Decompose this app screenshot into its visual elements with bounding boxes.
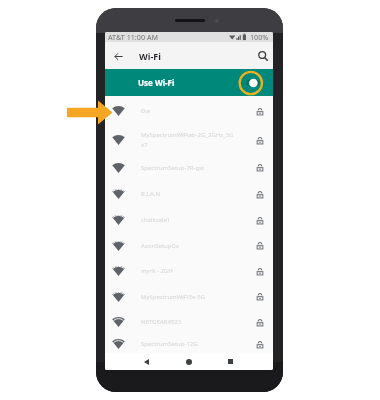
button[interactable]: Search bbox=[254, 47, 272, 65]
staticText: NETGEAR4523 bbox=[141, 318, 182, 326]
button[interactable]: Use Wi-Fi bbox=[105, 69, 273, 96]
staticText: MySpectrumWiFi5e-5G bbox=[141, 293, 206, 301]
staticText: Use Wi-Fi bbox=[138, 77, 175, 88]
button[interactable]: Use Wi-Fi toggle bbox=[240, 70, 266, 96]
button[interactable]: MySpectrumWiFi5e-5G bbox=[105, 284, 273, 309]
button[interactable]: SpectrumSetup-12G bbox=[105, 335, 273, 353]
staticText: SpectrumSetup-12G bbox=[141, 340, 198, 348]
button[interactable]: Back bbox=[140, 355, 153, 368]
button[interactable]: MySpectrumWiFiab-2G_2GHz_5G bbox=[105, 126, 273, 154]
button[interactable]: NETGEAR4523 bbox=[105, 309, 273, 335]
staticText: MySpectrumWiFiab-2G_2GHz_5G bbox=[141, 131, 234, 139]
button[interactable]: myrk - 2GH bbox=[105, 258, 273, 284]
button[interactable]: chalkzale1 bbox=[105, 207, 273, 233]
button[interactable]: Home bbox=[182, 355, 195, 368]
staticText: AxonSetupCo bbox=[141, 242, 179, 250]
staticText: AT&T 11:00 AM bbox=[108, 32, 158, 42]
button[interactable]: Navigate up bbox=[109, 47, 127, 65]
staticText: 100% bbox=[250, 32, 269, 42]
button[interactable]: R.I.A.N bbox=[105, 181, 273, 207]
staticText: x7 bbox=[141, 141, 148, 149]
staticText: SpectrumSetup-7R-gst bbox=[141, 164, 205, 172]
staticText: Wi-Fi bbox=[139, 50, 161, 62]
button[interactable]: SpectrumSetup-7R-gst bbox=[105, 154, 273, 181]
staticText: Dw bbox=[141, 107, 151, 115]
staticText: R.I.A.N bbox=[141, 190, 160, 198]
button[interactable]: Dw bbox=[105, 96, 273, 126]
button[interactable]: AxonSetupCo bbox=[105, 233, 273, 258]
button[interactable]: Recent apps bbox=[224, 355, 237, 368]
staticText: myrk - 2GH bbox=[141, 267, 173, 275]
staticText: chalkzale1 bbox=[141, 216, 171, 224]
